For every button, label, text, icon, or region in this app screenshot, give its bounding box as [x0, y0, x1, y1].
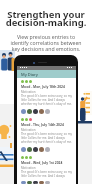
staticText: My Diary: [21, 72, 38, 77]
staticText: View previous entries to identify correl…: [0, 33, 92, 52]
staticText: Mood - Wed, July 1st 2024: [21, 160, 63, 164]
button[interactable]: Mood - Mon, July 18th 2024: [17, 78, 76, 116]
staticText: Strengthen your decision-making.: [0, 8, 92, 29]
staticText: Motivation The good: It's been extra sca…: [21, 90, 72, 106]
button[interactable]: Mood - Wed, July 1st 2024: [17, 154, 76, 184]
staticText: Mood - Thu, July 14th 2024: [21, 122, 64, 126]
staticText: Motivation The good: It's been extra sca…: [21, 128, 72, 144]
button[interactable]: My Diary: [17, 70, 76, 78]
staticText: Mood - Mon, July 18th 2024: [21, 84, 65, 88]
staticText: Motivation The good: It's been extra sca…: [21, 166, 72, 178]
button[interactable]: Mood - Thu, July 14th 2024: [17, 116, 76, 154]
